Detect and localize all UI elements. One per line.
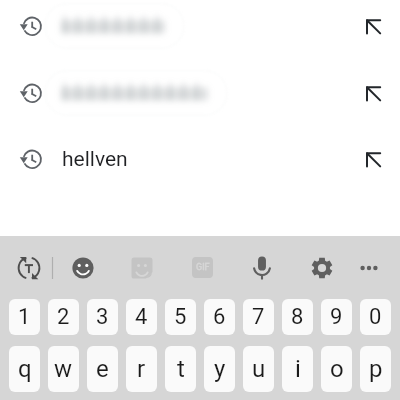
button[interactable]: w (48, 346, 79, 392)
button[interactable]: Voice input (242, 248, 282, 288)
staticText: 1 (18, 304, 31, 330)
button[interactable]: 7 (243, 299, 274, 335)
staticText: y (214, 355, 226, 383)
button[interactable] (0, 67, 400, 119)
staticText: r (137, 355, 146, 383)
button[interactable]: 3 (87, 299, 118, 335)
staticText: u (252, 355, 266, 383)
staticText: 4 (135, 304, 148, 330)
staticText: e (96, 355, 109, 383)
button[interactable]: 2 (48, 299, 79, 335)
staticText: p (369, 355, 383, 383)
staticText: hellven (62, 147, 128, 172)
button[interactable]: Translate (9, 248, 49, 288)
button[interactable]: y (204, 346, 235, 392)
staticText: 6 (213, 304, 226, 330)
button[interactable]: r (126, 346, 157, 392)
staticText: q (18, 355, 32, 383)
button[interactable]: GIF (183, 248, 223, 288)
staticText: 7 (252, 304, 265, 330)
button[interactable]: Stickers (122, 248, 162, 288)
button[interactable]: Emoji (63, 248, 103, 288)
button[interactable]: u (243, 346, 274, 392)
button[interactable]: q (9, 346, 40, 392)
button[interactable]: 1 (9, 299, 40, 335)
staticText: GIF (196, 262, 210, 273)
staticText: 8 (291, 304, 304, 330)
button[interactable]: 8 (282, 299, 313, 335)
button[interactable]: Settings (302, 248, 342, 288)
button[interactable]: i (282, 346, 313, 392)
button[interactable]: More options (349, 248, 389, 288)
button[interactable]: p (360, 346, 391, 392)
button[interactable]: t (165, 346, 196, 392)
button[interactable]: 0 (360, 299, 391, 335)
button[interactable]: 9 (321, 299, 352, 335)
staticText: 0 (369, 304, 382, 330)
button[interactable]: 4 (126, 299, 157, 335)
button[interactable]: hellven (0, 133, 400, 185)
staticText: t (177, 355, 185, 383)
staticText: 3 (96, 304, 109, 330)
button[interactable] (0, 0, 400, 52)
staticText: i (295, 355, 301, 383)
staticText: o (330, 355, 344, 383)
staticText: w (54, 355, 73, 383)
staticText: 2 (57, 304, 70, 330)
button[interactable]: 5 (165, 299, 196, 335)
staticText: 5 (174, 304, 187, 330)
button[interactable]: 6 (204, 299, 235, 335)
staticText: 9 (330, 304, 343, 330)
button[interactable]: e (87, 346, 118, 392)
button[interactable]: o (321, 346, 352, 392)
